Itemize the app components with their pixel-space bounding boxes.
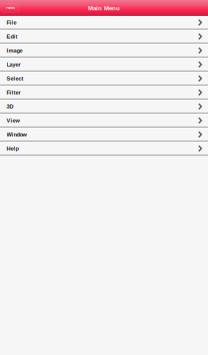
button[interactable]: File bbox=[0, 16, 208, 30]
staticText: Help bbox=[7, 145, 19, 152]
staticText: Panels bbox=[6, 6, 14, 9]
staticText: Filter bbox=[7, 89, 21, 96]
button[interactable]: Panels bbox=[1, 3, 19, 13]
button[interactable]: View bbox=[0, 114, 208, 128]
button[interactable]: Layer bbox=[0, 58, 208, 72]
staticText: View bbox=[7, 117, 20, 124]
button[interactable]: Help bbox=[0, 142, 208, 156]
button[interactable]: Filter bbox=[0, 86, 208, 100]
staticText: Window bbox=[7, 131, 27, 138]
button[interactable]: 3D bbox=[0, 100, 208, 114]
staticText: Select bbox=[7, 75, 24, 82]
staticText: File bbox=[7, 19, 17, 26]
staticText: Layer bbox=[7, 61, 21, 68]
button[interactable]: Image bbox=[0, 44, 208, 58]
button[interactable]: Edit bbox=[0, 30, 208, 44]
button[interactable]: Select bbox=[0, 72, 208, 86]
staticText: Main Menu bbox=[88, 5, 120, 11]
button[interactable]: Window bbox=[0, 128, 208, 142]
staticText: Image bbox=[7, 47, 23, 54]
staticText: Edit bbox=[7, 33, 18, 40]
staticText: 3D bbox=[7, 103, 14, 110]
